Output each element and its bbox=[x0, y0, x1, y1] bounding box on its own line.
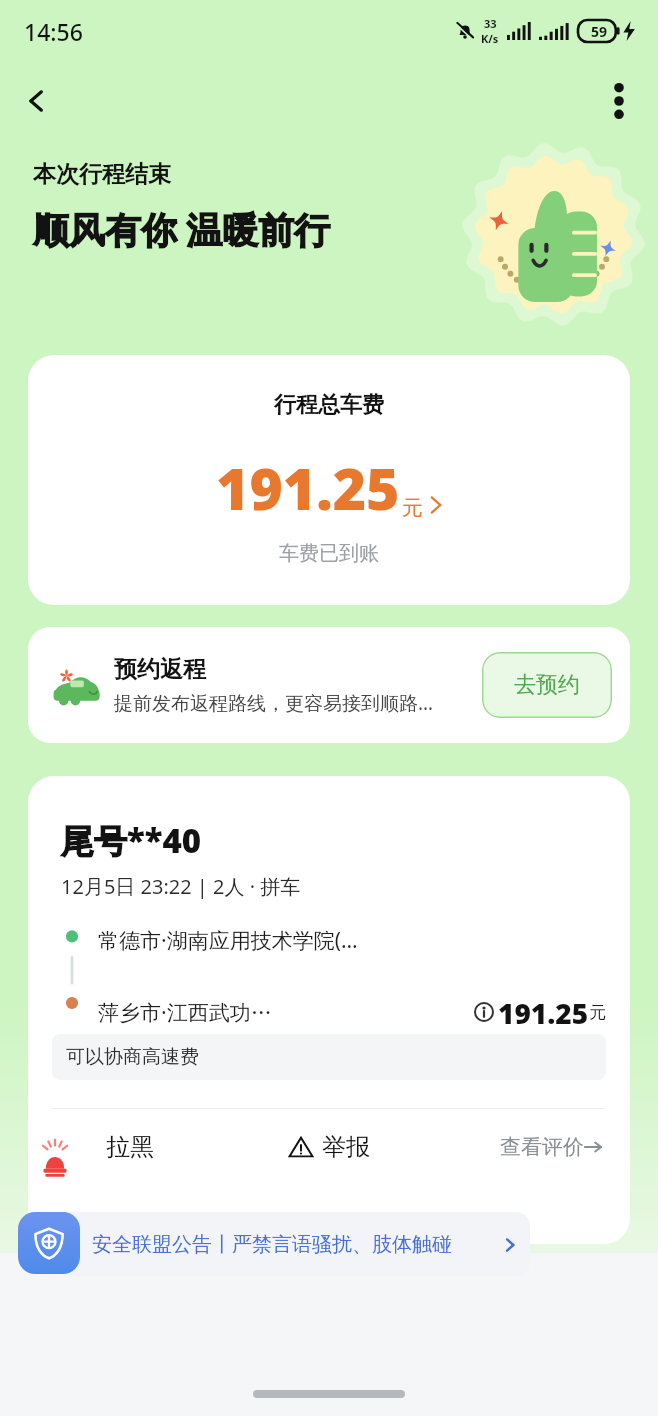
staticText: 14:56 bbox=[24, 16, 83, 47]
staticText: 本次行程结束 bbox=[33, 160, 171, 189]
button[interactable]: Back bbox=[10, 74, 64, 128]
staticText: 查看评价 bbox=[500, 1134, 584, 1160]
button[interactable]: 查看评价 bbox=[496, 1128, 606, 1166]
staticText: 12月5日 23:22 | 2人 · 拼车 bbox=[61, 873, 301, 900]
staticText: 常德市·湖南应用技术学院(… bbox=[98, 926, 358, 955]
staticText: 顺风有你 温暖前行 bbox=[33, 205, 331, 254]
button[interactable]: 安全联盟公告丨严禁言语骚扰、肢体触碰 bbox=[40, 1212, 530, 1276]
staticText: 拉黑 bbox=[106, 1132, 154, 1162]
button[interactable]: More options bbox=[592, 74, 646, 128]
button[interactable]: 去预约 bbox=[482, 652, 612, 718]
staticText: 元 bbox=[589, 1002, 606, 1023]
staticText: 预约返程 bbox=[114, 655, 206, 684]
button[interactable]: 举报 bbox=[280, 1126, 378, 1168]
staticText: 去预约 bbox=[514, 671, 580, 699]
staticText: 33 bbox=[484, 16, 497, 31]
staticText: 萍乡市·江西武功山-萍乡武… bbox=[98, 998, 286, 1027]
staticText: 可以协商高速费 bbox=[66, 1045, 199, 1069]
staticText: 举报 bbox=[322, 1132, 370, 1162]
staticText: 191.25 bbox=[498, 994, 589, 1030]
staticText: 59 bbox=[591, 22, 608, 41]
staticText: 提前发布返程路线，更容易接到顺路… bbox=[114, 690, 434, 716]
staticText: 安全联盟公告丨严禁言语骚扰、肢体触碰 bbox=[92, 1232, 504, 1257]
staticText: K/s bbox=[481, 31, 499, 46]
staticText: 尾号**40 bbox=[61, 818, 202, 863]
button[interactable]: 行程总车费 bbox=[28, 355, 630, 605]
staticText: 车费已到账 bbox=[279, 541, 379, 566]
staticText: 191.25 bbox=[216, 449, 400, 527]
button[interactable]: 拉黑 bbox=[52, 1126, 162, 1168]
staticText: 元 bbox=[402, 495, 423, 521]
staticText: 行程总车费 bbox=[274, 391, 384, 419]
